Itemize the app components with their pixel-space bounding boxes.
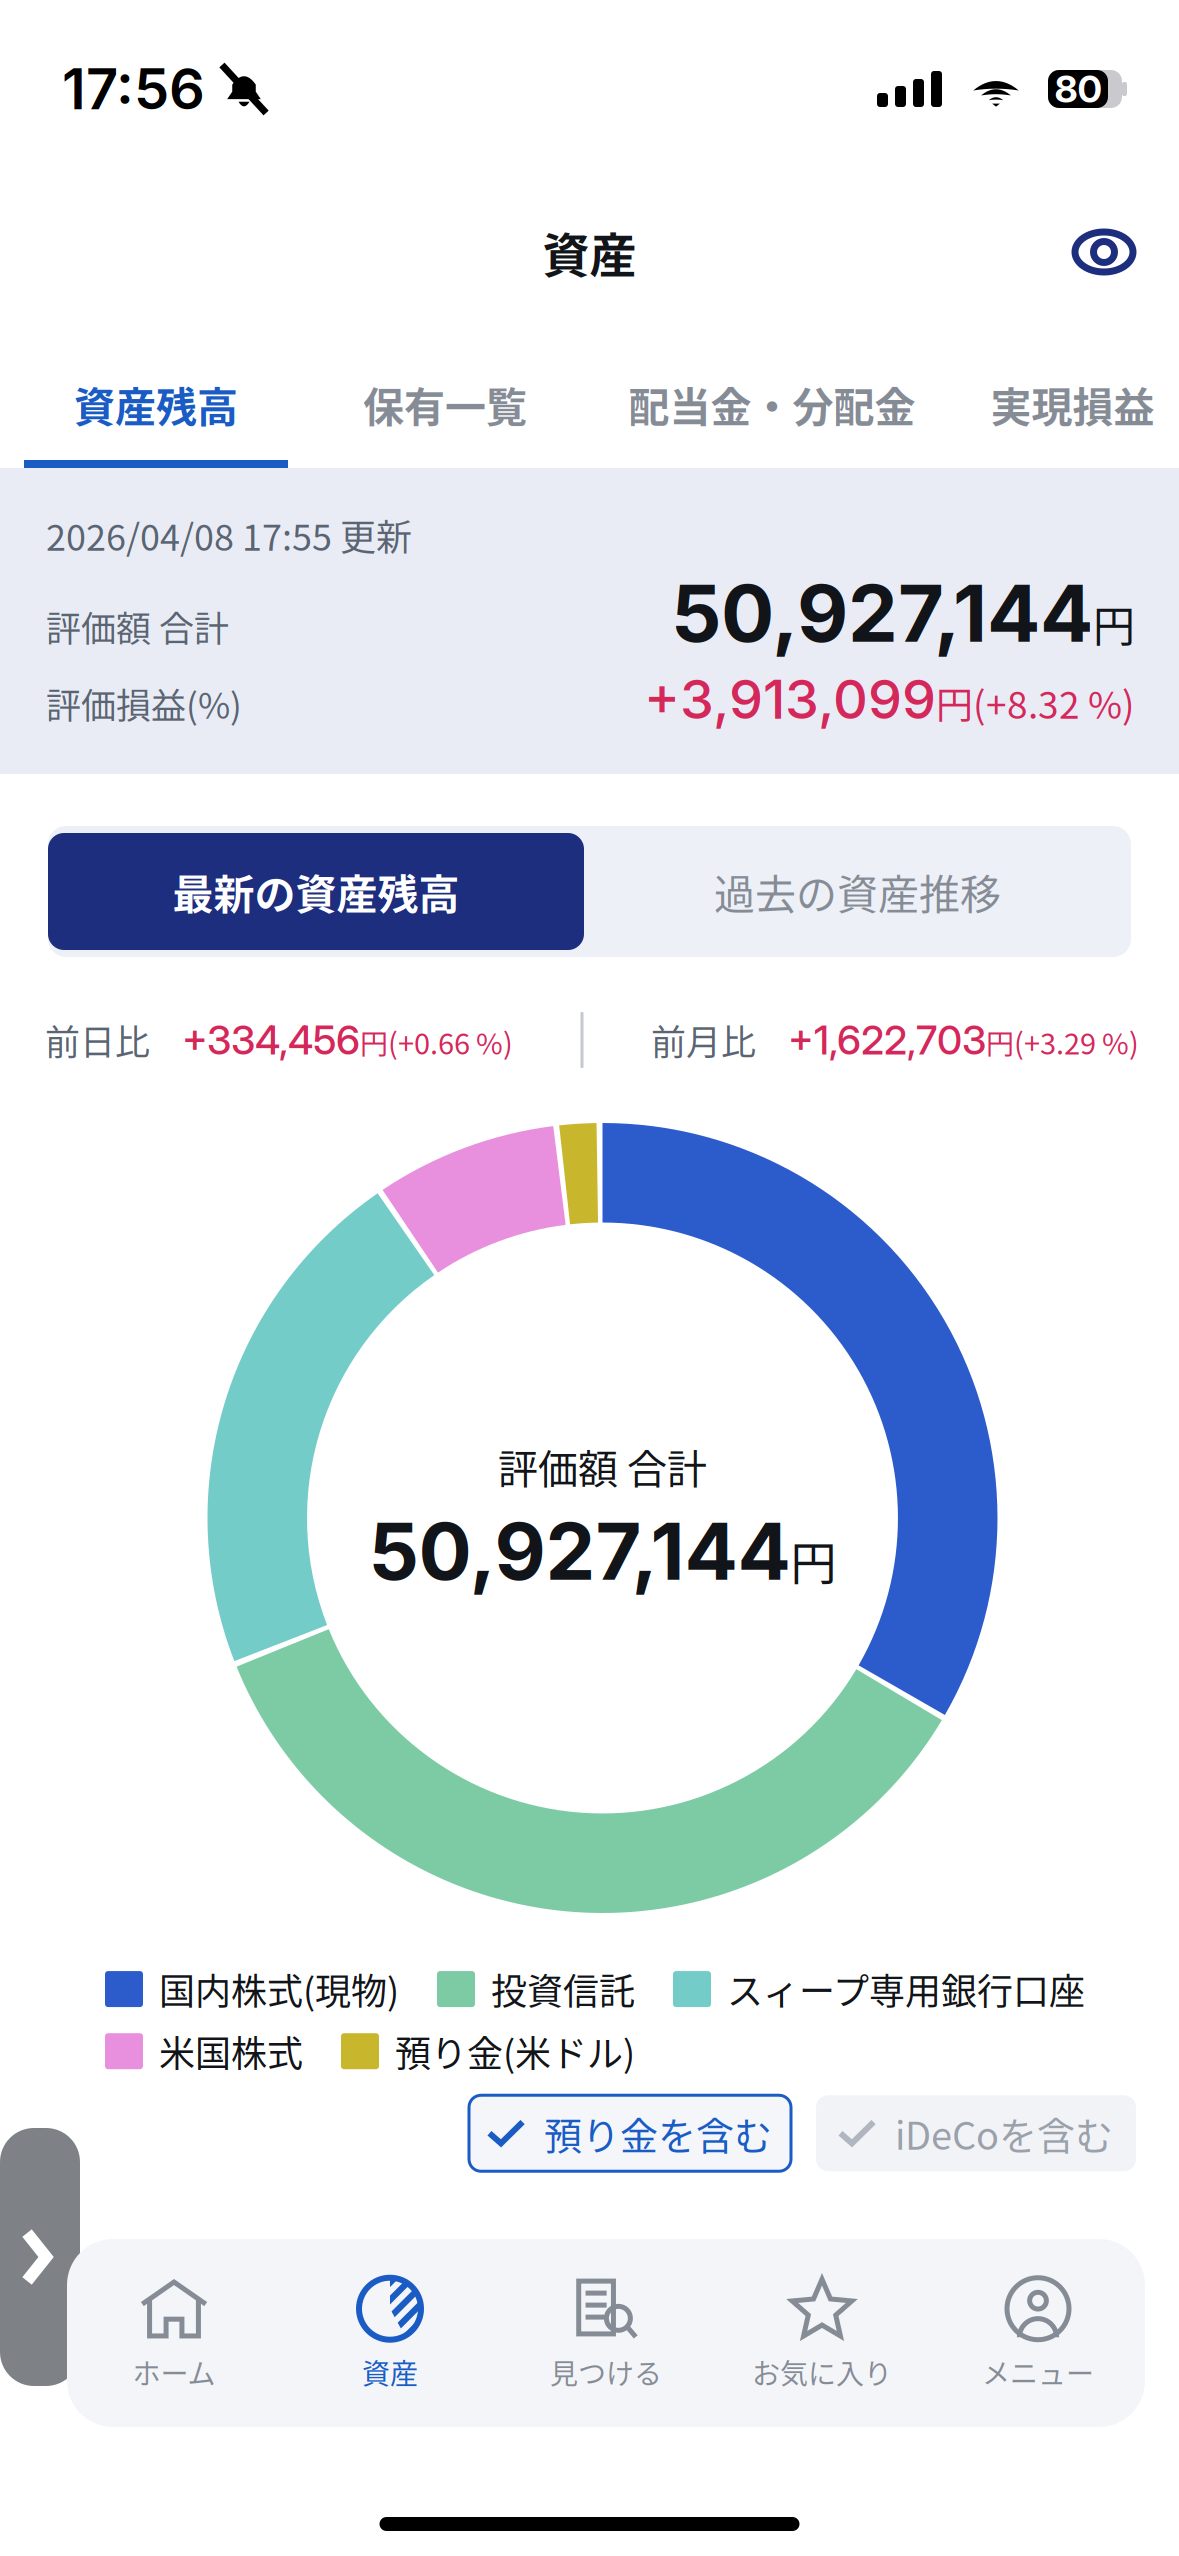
- staticText: +334,456: [182, 1016, 360, 1064]
- staticText: 円: [936, 676, 973, 729]
- staticText: 保有一覧: [363, 375, 527, 434]
- staticText: 評価額 合計: [498, 1437, 707, 1495]
- staticText: 資産: [362, 2352, 418, 2392]
- staticText: 17:56: [62, 55, 205, 123]
- staticText: +1,622,703: [788, 1016, 986, 1064]
- button[interactable]: メニューを開く: [0, 2128, 80, 2386]
- staticText: 実現損益: [990, 375, 1154, 434]
- staticText: 50,927,144: [368, 1503, 790, 1599]
- staticText: 円: [790, 1526, 836, 1593]
- staticText: (+8.32 %): [973, 676, 1135, 729]
- staticText: +3,913,099: [644, 666, 936, 732]
- button[interactable]: iDeCoを含む: [816, 2095, 1136, 2171]
- staticText: 配当金・分配金: [628, 375, 915, 434]
- staticText: 米国株式: [159, 2025, 303, 2077]
- staticText: 評価額 合計: [46, 601, 229, 652]
- staticText: 資産: [542, 218, 636, 286]
- button[interactable]: ホーム: [66, 2258, 282, 2408]
- staticText: 50,927,144: [671, 565, 1093, 661]
- staticText: 円: [986, 1022, 1014, 1063]
- button[interactable]: 配当金・分配金: [578, 326, 966, 468]
- staticText: 2026/04/08 17:55 更新: [46, 509, 412, 561]
- button[interactable]: お気に入り: [714, 2258, 930, 2408]
- staticText: 資産残高: [74, 375, 238, 434]
- staticText: 評価損益(%): [46, 678, 242, 729]
- button[interactable]: 過去の資産推移: [584, 833, 1131, 950]
- staticText: ホーム: [132, 2352, 215, 2392]
- button[interactable]: 保有一覧: [312, 326, 578, 468]
- staticText: 預り金(米ドル): [395, 2025, 635, 2077]
- button[interactable]: 見つける: [498, 2258, 714, 2408]
- staticText: 前月比: [651, 1015, 756, 1065]
- button[interactable]: 資産残高: [0, 326, 312, 468]
- staticText: (+0.66 %): [388, 1021, 513, 1063]
- staticText: 国内株式(現物): [159, 1963, 399, 2015]
- staticText: 投資信託: [491, 1963, 635, 2015]
- button[interactable]: 預り金を含む: [469, 2095, 791, 2171]
- staticText: 最新の資産残高: [172, 862, 459, 921]
- button[interactable]: 実現損益: [966, 326, 1179, 468]
- button[interactable]: メニュー: [930, 2258, 1146, 2408]
- staticText: 80: [1054, 66, 1101, 112]
- staticText: 過去の資産推移: [714, 862, 1001, 921]
- staticText: スィープ専用銀行口座: [727, 1963, 1085, 2015]
- staticText: 円: [360, 1022, 388, 1063]
- staticText: (+3.29 %): [1014, 1021, 1139, 1063]
- staticText: メニュー: [982, 2352, 1094, 2392]
- staticText: 預り金を含む: [544, 2106, 772, 2161]
- staticText: iDeCoを含む: [895, 2106, 1113, 2161]
- button[interactable]: 資産: [282, 2258, 498, 2408]
- staticText: 前日比: [45, 1015, 150, 1065]
- staticText: お気に入り: [752, 2352, 892, 2392]
- button[interactable]: 金額の表示切替: [1056, 204, 1152, 300]
- button[interactable]: 最新の資産残高: [48, 833, 584, 950]
- staticText: 見つける: [550, 2352, 662, 2392]
- staticText: 円: [1093, 593, 1135, 654]
